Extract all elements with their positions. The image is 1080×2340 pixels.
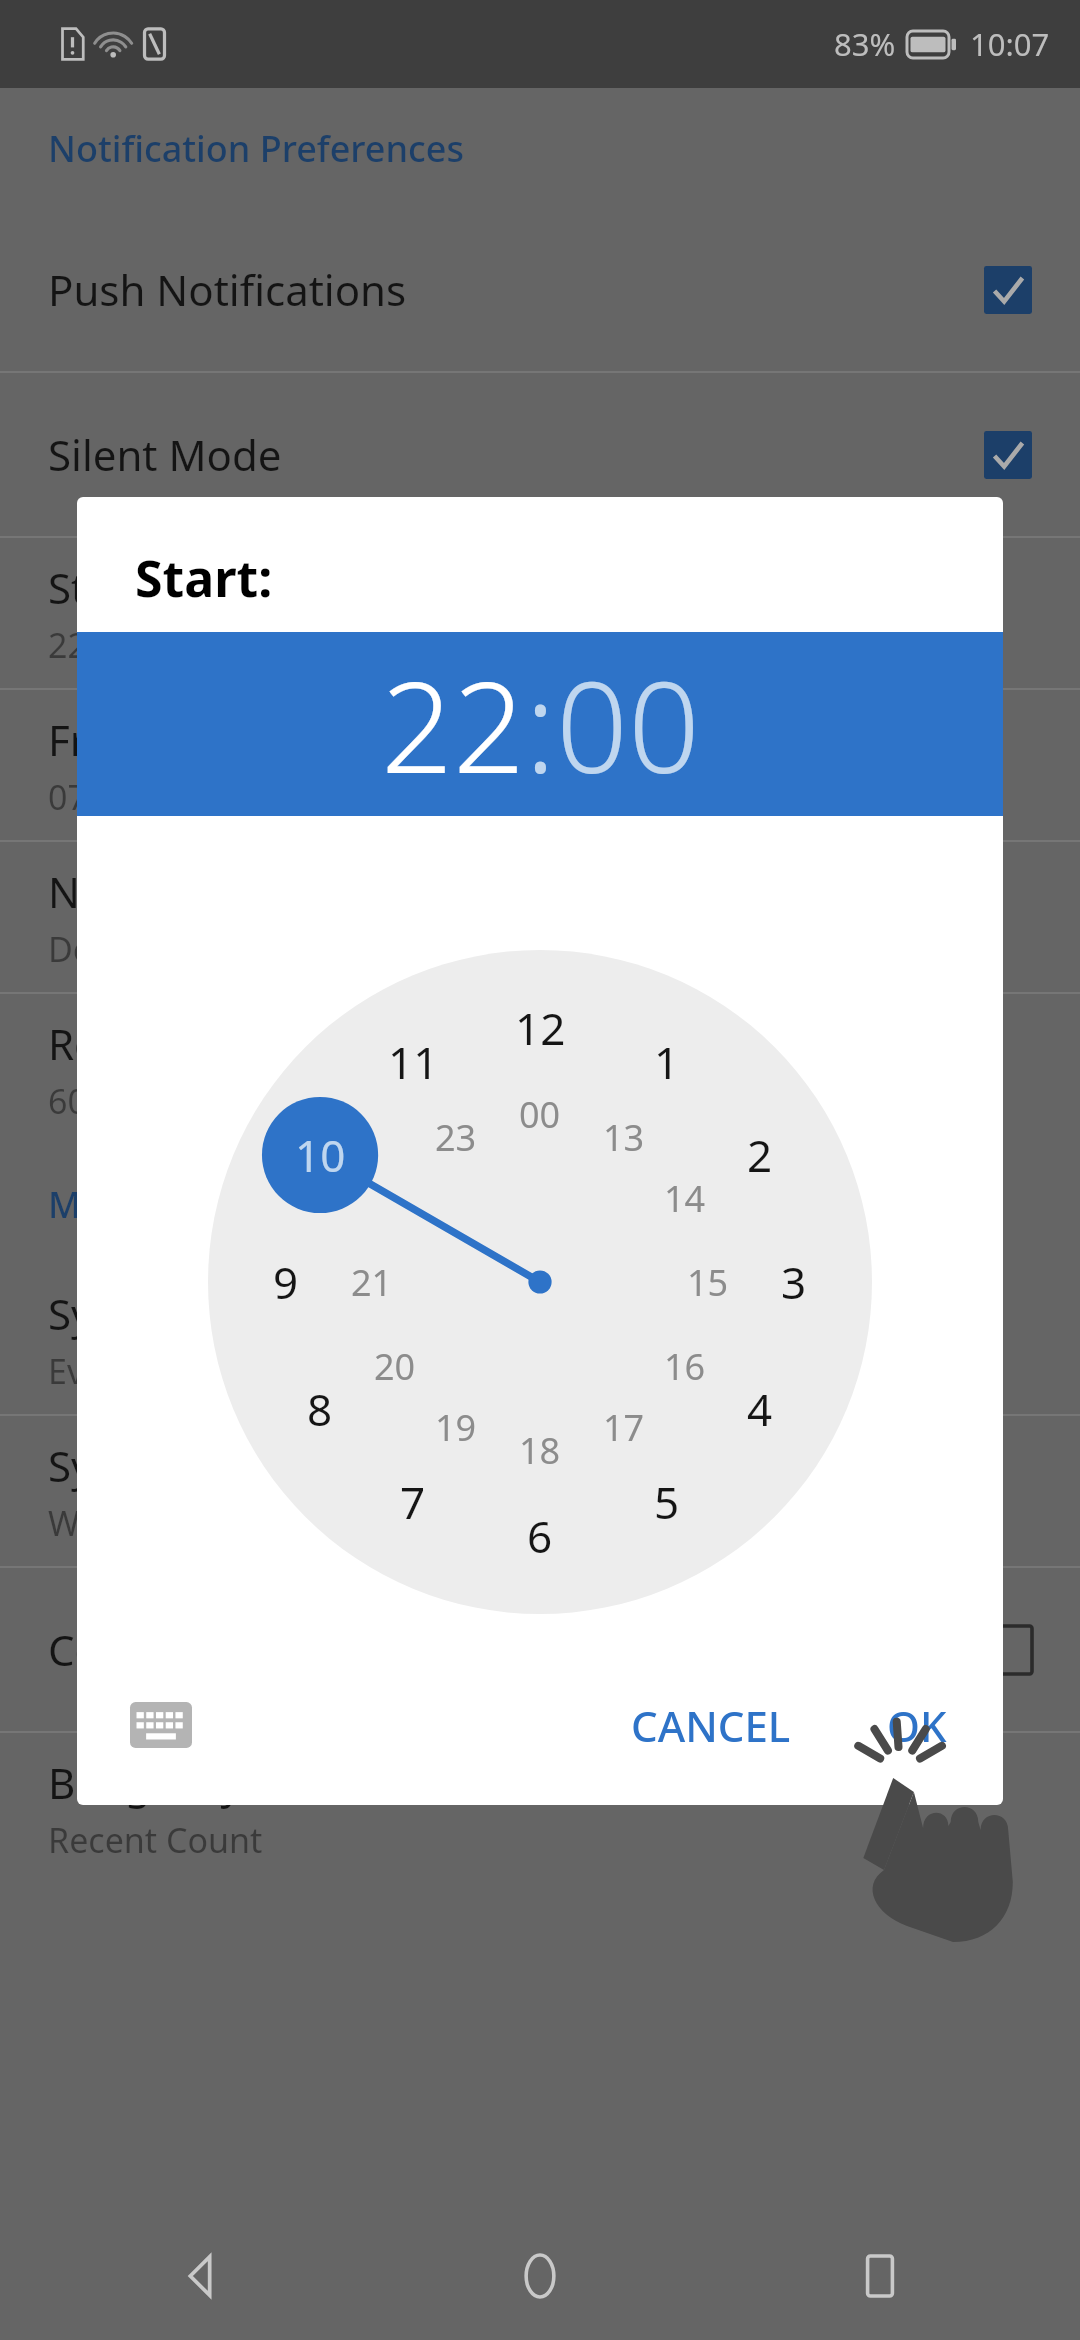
button[interactable]: 19 (425, 1393, 487, 1462)
button[interactable]: OK (867, 1681, 967, 1770)
button[interactable]: 13 (593, 1103, 655, 1172)
staticText: Every 15 minutes (48, 1348, 322, 1394)
staticText: 4 (747, 1379, 773, 1439)
button[interactable]: 3 (771, 1242, 817, 1322)
staticText: 5 (654, 1472, 680, 1532)
button[interactable]: Back (150, 2226, 250, 2326)
staticText: 23 (435, 1113, 477, 1162)
button[interactable]: 15 (677, 1248, 739, 1317)
button[interactable]: Push Notifications (0, 208, 1080, 371)
button[interactable]: 16 (654, 1332, 716, 1401)
button[interactable]: 4 (737, 1369, 783, 1449)
staticText: 07:00 (48, 774, 135, 820)
button[interactable]: 7 (390, 1462, 436, 1542)
button[interactable]: Silent Mode (0, 373, 1080, 536)
staticText: 14 (664, 1174, 706, 1223)
staticText: 2 (747, 1125, 773, 1185)
staticText: Push Notifications (48, 261, 984, 318)
button[interactable]: 1 (644, 1022, 690, 1102)
staticText: 60 seconds (48, 1078, 227, 1124)
button[interactable]: 14 (654, 1164, 716, 1233)
button[interactable]: 18 (509, 1416, 571, 1485)
button[interactable]: Repeat alert (0, 994, 1080, 1144)
button[interactable]: Home (490, 2226, 590, 2326)
button[interactable]: Switch to text input (123, 1696, 199, 1754)
staticText: 3 (781, 1252, 807, 1312)
button[interactable]: 00 (556, 638, 700, 810)
staticText: Silent Mode (48, 426, 984, 483)
button[interactable]: 11 (378, 1022, 449, 1102)
staticText: Wifi only (48, 1500, 186, 1546)
staticText: 13 (603, 1113, 645, 1162)
staticText: Default (48, 926, 165, 972)
button[interactable]: 10 (285, 1115, 356, 1195)
button[interactable]: Recent apps (830, 2226, 930, 2326)
staticText: 22:00 (48, 622, 135, 668)
button[interactable]: 12 (505, 988, 576, 1068)
staticText: Recent Count (48, 1817, 263, 1863)
staticText: Notification sound (48, 863, 412, 920)
button[interactable]: 23 (425, 1103, 487, 1172)
staticText: From (48, 711, 151, 768)
button[interactable]: 2 (737, 1115, 783, 1195)
staticText: 18 (519, 1426, 561, 1475)
button[interactable]: 22 (381, 638, 525, 810)
staticText: 6 (527, 1506, 553, 1566)
staticText: CANCEL (631, 1697, 791, 1754)
staticText: 10 (295, 1125, 346, 1185)
button[interactable]: Badge style (0, 1733, 1080, 1883)
staticText: Message Sync (48, 1180, 289, 1229)
staticText: 20 (374, 1342, 416, 1391)
staticText: 7 (400, 1472, 426, 1532)
staticText: 11 (388, 1032, 439, 1092)
button[interactable]: 20 (364, 1332, 426, 1401)
staticText: Repeat alert (48, 1015, 288, 1072)
staticText: 17 (603, 1403, 645, 1452)
staticText: : (525, 638, 556, 810)
staticText: 19 (435, 1403, 477, 1452)
staticText: 1 (654, 1032, 680, 1092)
staticText: 15 (687, 1258, 729, 1307)
button[interactable]: 6 (517, 1496, 563, 1576)
staticText: Start quiet hours (48, 559, 381, 616)
staticText: Compact Message List (48, 1621, 984, 1678)
button[interactable]: Sync frequency (0, 1264, 1080, 1414)
staticText: Badge style (48, 1754, 277, 1811)
button[interactable]: 9 (263, 1242, 309, 1322)
staticText: 8 (307, 1379, 333, 1439)
staticText: 21 (351, 1258, 393, 1307)
staticText: 12 (515, 998, 566, 1058)
button[interactable]: CANCEL (611, 1681, 811, 1770)
staticText: OK (887, 1697, 947, 1754)
button[interactable]: Start quiet hours (0, 538, 1080, 688)
button[interactable]: 5 (644, 1462, 690, 1542)
staticText: 9 (273, 1252, 299, 1312)
button[interactable]: Sync over (0, 1416, 1080, 1566)
button[interactable]: Compact Message List (0, 1568, 1080, 1731)
button[interactable]: Notification sound (0, 842, 1080, 992)
button[interactable]: 8 (297, 1369, 343, 1449)
button[interactable]: From (0, 690, 1080, 840)
button[interactable]: 17 (593, 1393, 655, 1462)
staticText: Notification Preferences (48, 124, 464, 173)
staticText: Sync frequency (48, 1285, 348, 1342)
staticText: 00 (519, 1090, 561, 1139)
staticText: 16 (664, 1342, 706, 1391)
staticText: 10:07 (970, 23, 1050, 65)
staticText: 83% (834, 23, 896, 65)
button[interactable]: 21 (341, 1248, 403, 1317)
staticText: Start: (135, 544, 273, 612)
staticText: Sync over (48, 1437, 237, 1494)
button[interactable]: 00 (509, 1080, 571, 1149)
